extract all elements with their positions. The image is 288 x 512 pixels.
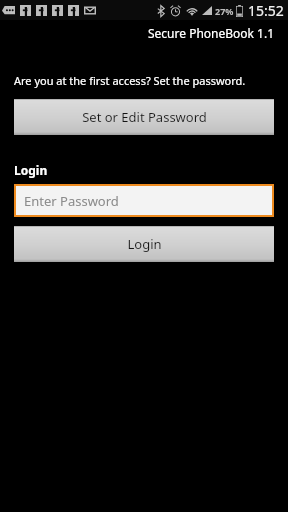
staticText: 15:52 xyxy=(248,1,284,20)
button[interactable]: Set or Edit Password xyxy=(14,99,274,135)
staticText: Enter Password xyxy=(24,192,119,210)
button[interactable]: Login xyxy=(14,226,274,262)
staticText: 27% xyxy=(215,5,234,17)
staticText: Login xyxy=(14,162,48,178)
button[interactable]: Enter Password xyxy=(16,186,272,215)
staticText: Set or Edit Password xyxy=(82,108,207,126)
staticText: Are you at the first access? Set the pas… xyxy=(14,73,246,88)
staticText: Secure PhoneBook 1.1 xyxy=(148,25,275,41)
staticText: Login xyxy=(127,235,162,253)
